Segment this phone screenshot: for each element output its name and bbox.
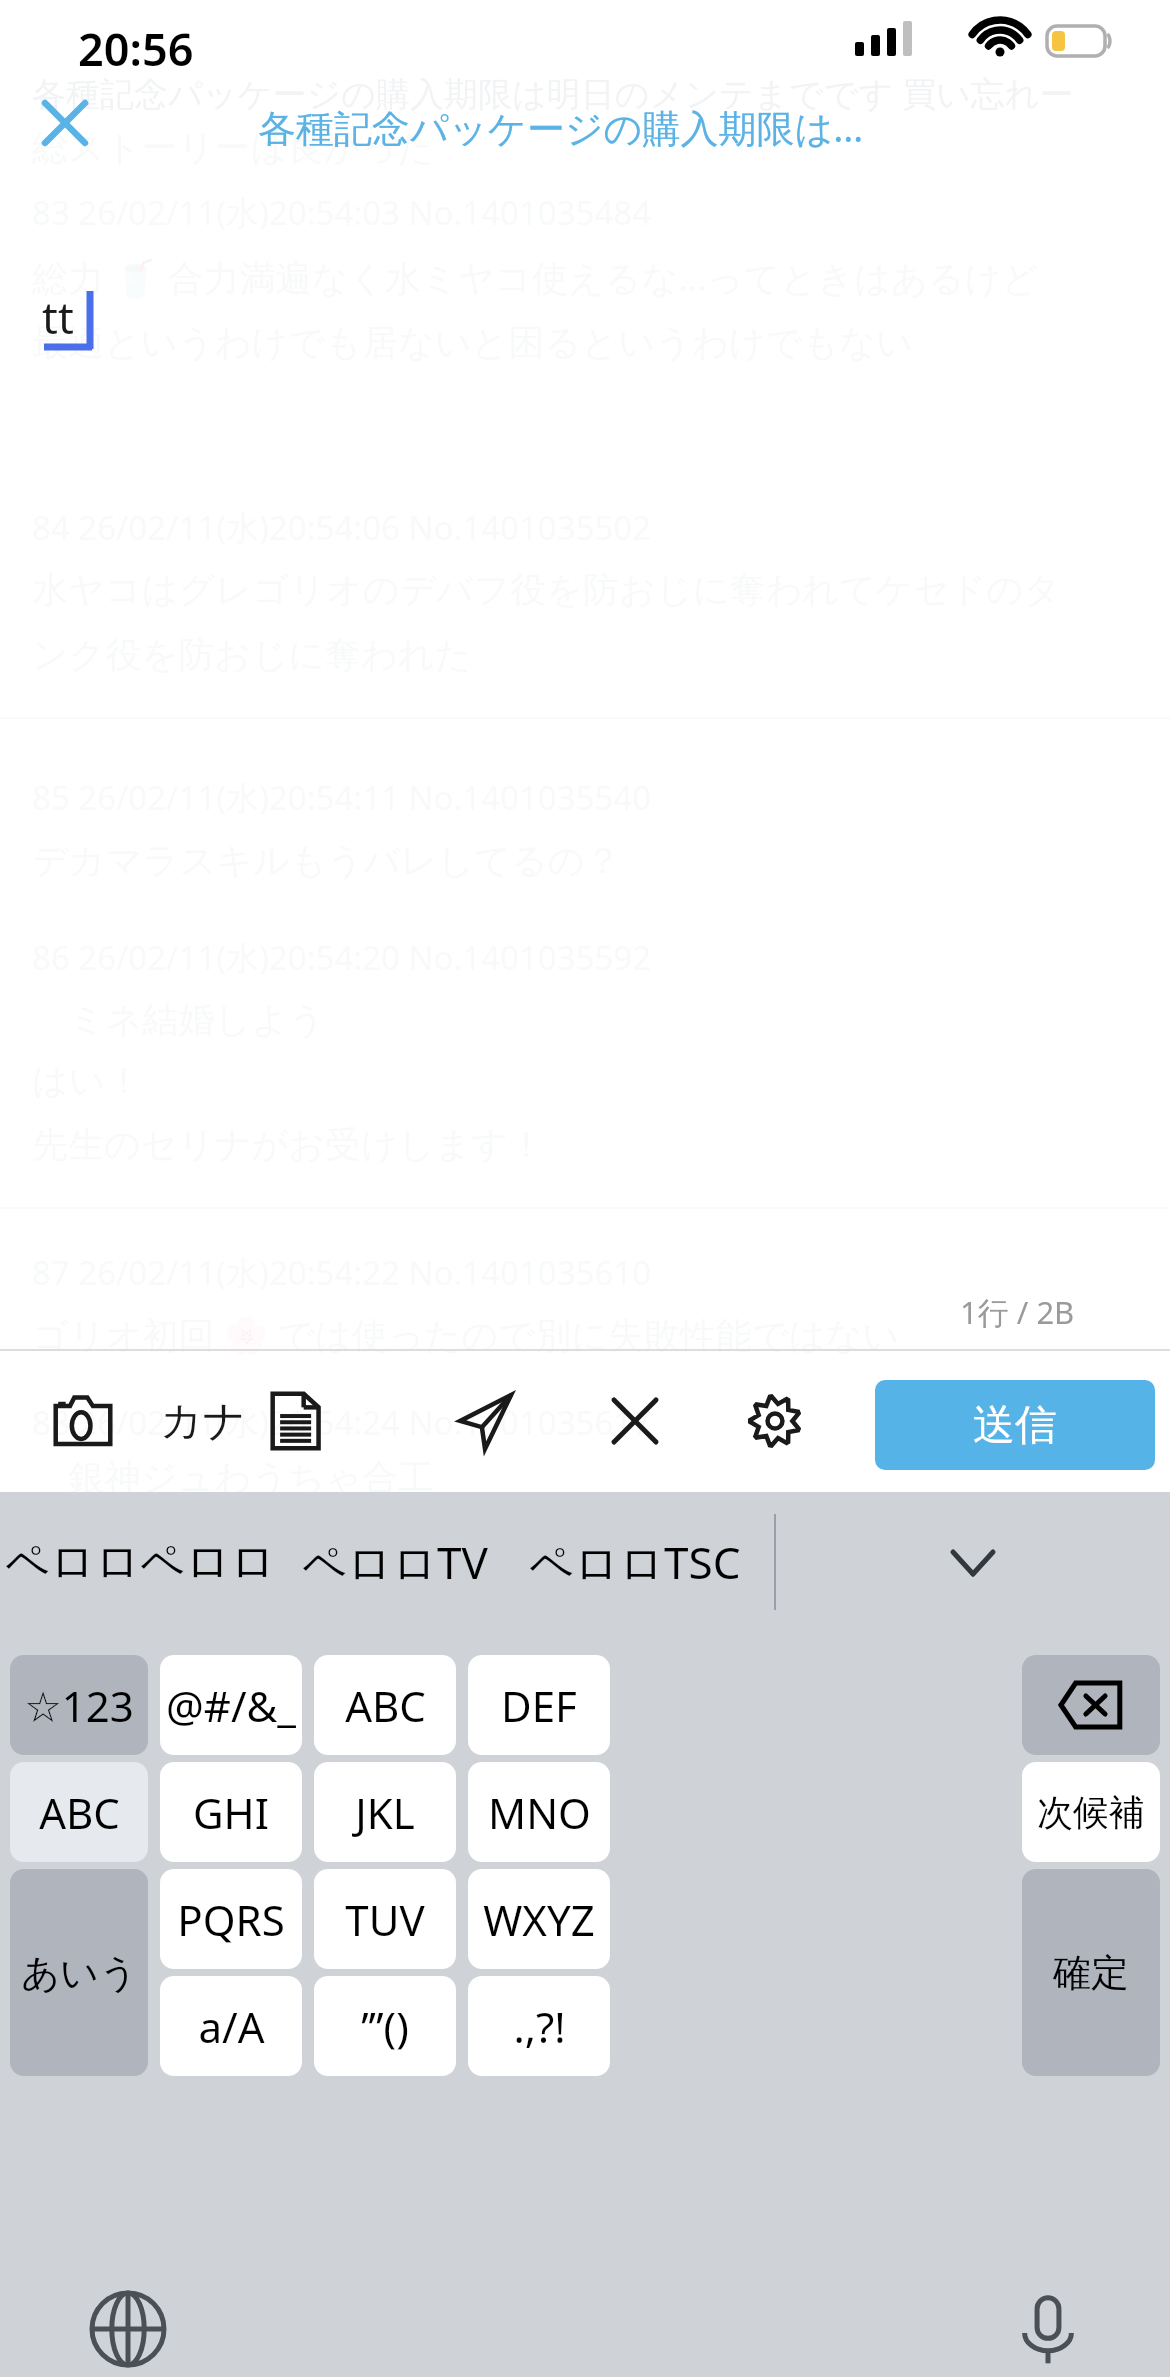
staticText: カナ (160, 1395, 246, 1448)
staticText: ’”() (361, 1998, 409, 2055)
button[interactable]: GHI (160, 1762, 302, 1862)
button[interactable]: 音声入力 (1000, 2290, 1096, 2377)
button[interactable]: MNO (468, 1762, 610, 1862)
staticText: WXYZ (483, 1891, 595, 1948)
button[interactable]: 次候補 (1022, 1762, 1160, 1862)
button[interactable]: TUV (314, 1869, 456, 1969)
staticText: ペロロTV (302, 1532, 488, 1592)
button[interactable]: クリア (590, 1376, 680, 1466)
staticText: .,?! (513, 1998, 566, 2055)
staticText: ゝ銀神ジュわうちゃ合工 (32, 1455, 1170, 1500)
button[interactable]: カナ (158, 1381, 248, 1461)
button[interactable]: テンプレート (250, 1376, 340, 1466)
staticText: ゴリオ初回 🌸 では使ったので別に失敗性能ではない (32, 1310, 1170, 1359)
staticText: 総力 🥤 合力満遍なく水ミヤコ使えるな…ってときはあるけど (32, 253, 1170, 302)
button[interactable]: ペロロペロロ (0, 1492, 280, 1632)
staticText: ABC (345, 1677, 426, 1734)
button[interactable]: DEF (468, 1655, 610, 1755)
button[interactable]: @#/&_ (160, 1655, 302, 1755)
staticText: ペロロTSC (529, 1532, 741, 1592)
button[interactable]: ’”() (314, 1976, 456, 2076)
button[interactable]: 各種記念パッケージの購入期限は… (258, 101, 864, 153)
staticText: 最適というわけでも居ないと困るというわけでもない (32, 320, 1170, 365)
staticText: 確定 (1053, 1949, 1129, 1997)
button[interactable]: 言語を切り替え (80, 2290, 176, 2377)
staticText: ペロロペロロ (5, 1535, 276, 1590)
button[interactable]: WXYZ (468, 1869, 610, 1969)
staticText: 次候補 (1037, 1790, 1145, 1835)
button[interactable]: ABC (10, 1762, 148, 1862)
staticText: PQRS (177, 1891, 285, 1948)
button[interactable]: 閉じる (20, 78, 110, 168)
button[interactable]: ペロロTSC (510, 1492, 760, 1632)
staticText: 総ストーリーは良かった (32, 125, 1170, 170)
button[interactable]: PQRS (160, 1869, 302, 1969)
button[interactable]: 設定 (730, 1376, 820, 1466)
button[interactable]: カメラ (38, 1376, 128, 1466)
button[interactable]: 送信 (875, 1380, 1155, 1470)
staticText: ABC (39, 1784, 120, 1841)
button[interactable]: 候補を展開 (776, 1492, 1170, 1632)
staticText: ☆123 (24, 1677, 134, 1734)
staticText: MNO (488, 1784, 591, 1841)
button[interactable]: 送る (440, 1376, 530, 1466)
button[interactable]: ABC (314, 1655, 456, 1755)
staticText: 88 26/02/11(水)20:54:24 No.1401035617 (32, 1400, 1170, 1445)
staticText: @#/&_ (166, 1677, 296, 1734)
staticText: a/A (198, 1998, 265, 2055)
staticText: 送信 (973, 1399, 1057, 1452)
staticText: DEF (501, 1677, 577, 1734)
staticText: TUV (345, 1891, 425, 1948)
button[interactable]: あいう (10, 1869, 148, 2076)
button[interactable]: ペロロTV (280, 1492, 510, 1632)
staticText: JKL (355, 1784, 415, 1841)
button[interactable]: 削除 (1022, 1655, 1160, 1755)
button[interactable]: .,?! (468, 1976, 610, 2076)
staticText: GHI (193, 1784, 269, 1841)
staticText: 20:56 (78, 18, 194, 79)
button[interactable]: a/A (160, 1976, 302, 2076)
staticText: tt (42, 287, 74, 347)
button[interactable]: ☆123 (10, 1655, 148, 1755)
staticText: 1行 / 2B (960, 1291, 1075, 1333)
staticText: あいう (21, 1949, 138, 1997)
staticText: 各種記念パッケージの購入期限は明日のメンテまでです 買い忘れー (32, 70, 1170, 116)
button[interactable]: JKL (314, 1762, 456, 1862)
button[interactable]: 確定 (1022, 1869, 1160, 2076)
